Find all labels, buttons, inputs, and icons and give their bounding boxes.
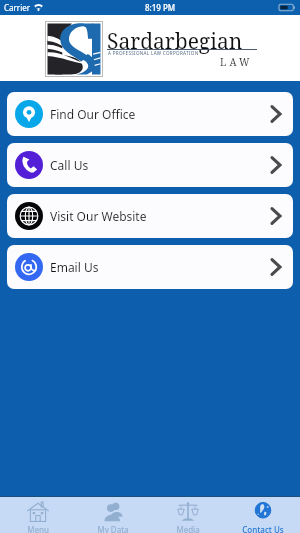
staticText: A PROFESSIONAL LAW CORPORATION <box>108 50 199 56</box>
button[interactable]: Visit Our Website <box>7 194 293 238</box>
staticText: Contact Us <box>242 524 284 533</box>
staticText: LAW <box>220 55 253 69</box>
staticText: Call Us <box>50 157 89 173</box>
staticText: Sardarbegian <box>107 27 243 56</box>
button[interactable]: Email Us <box>7 245 293 289</box>
button[interactable]: Call Us <box>7 143 293 187</box>
staticText: 8:19 PM <box>145 2 176 13</box>
button[interactable]: Media <box>150 497 225 533</box>
staticText: Carrier <box>4 2 31 13</box>
staticText: My Data <box>97 524 129 533</box>
button[interactable]: My Data <box>75 497 150 533</box>
staticText: Email Us <box>50 259 99 275</box>
button[interactable]: Menu <box>0 497 75 533</box>
button[interactable]: Find Our Office <box>7 92 293 136</box>
button[interactable]: Contact Us <box>225 497 300 533</box>
staticText: Visit Our Website <box>50 208 147 224</box>
staticText: Media <box>176 524 200 533</box>
staticText: Menu <box>27 524 49 533</box>
staticText: Find Our Office <box>50 106 136 122</box>
